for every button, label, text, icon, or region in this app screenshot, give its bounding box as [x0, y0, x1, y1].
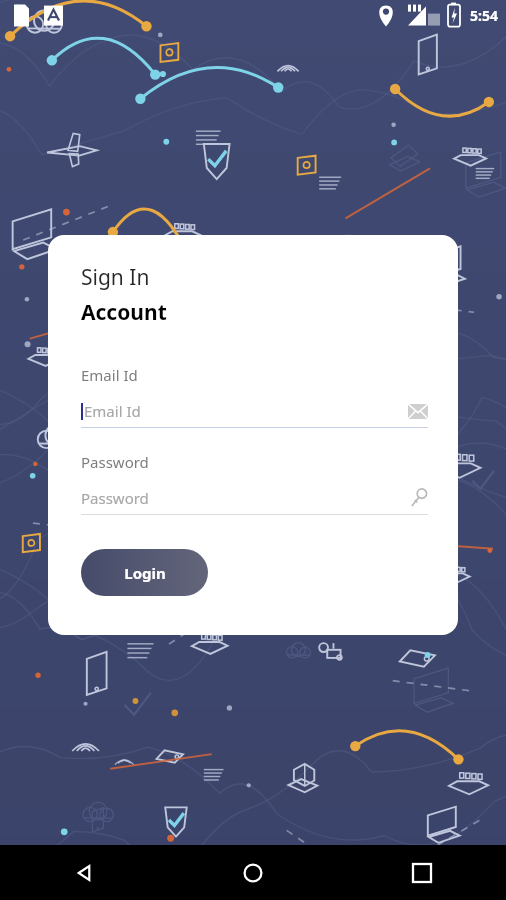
button[interactable]: Password [81, 485, 428, 511]
button[interactable]: Login [81, 549, 208, 596]
button[interactable]: Home [168, 845, 337, 900]
button[interactable]: Email Id [81, 398, 428, 424]
button[interactable]: Recent apps [337, 845, 506, 900]
staticText: Account [81, 298, 167, 327]
staticText: 5:54 [470, 6, 498, 25]
staticText: Login [124, 563, 166, 583]
staticText: Email Id [84, 401, 141, 421]
staticText: Email Id [81, 365, 138, 385]
staticText: Password [81, 488, 149, 508]
staticText: Sign In [81, 263, 150, 292]
button[interactable]: Back [0, 845, 168, 900]
staticText: Password [81, 452, 149, 472]
